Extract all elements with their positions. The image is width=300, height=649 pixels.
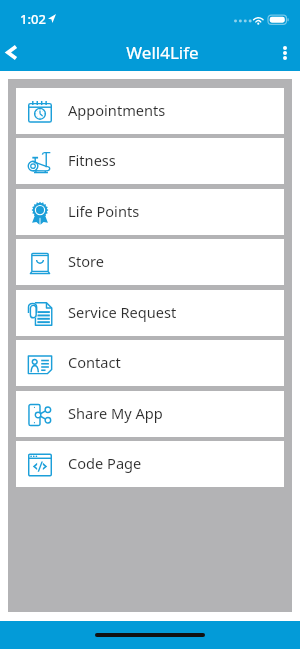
staticText: 1:02 (20, 10, 46, 28)
staticText: Fitness (68, 150, 116, 170)
button[interactable]: Store (16, 239, 284, 285)
staticText: Code Page (68, 453, 142, 473)
staticText: Appointments (68, 100, 166, 120)
staticText: Contact (68, 352, 121, 372)
staticText: Well4Life (126, 41, 199, 64)
button[interactable]: Life Points (16, 189, 284, 235)
staticText: Store (68, 251, 105, 271)
button[interactable]: Back (0, 38, 23, 67)
button[interactable]: Share My App (16, 391, 284, 437)
button[interactable]: Appointments (16, 88, 284, 134)
button[interactable]: More options (269, 38, 300, 67)
button[interactable]: Contact (16, 340, 284, 386)
staticText: Share My App (68, 403, 163, 423)
button[interactable]: Service Request (16, 290, 284, 336)
staticText: Life Points (68, 201, 140, 221)
button[interactable]: Code Page (16, 441, 284, 487)
staticText: Service Request (68, 302, 177, 322)
button[interactable]: Fitness (16, 138, 284, 184)
